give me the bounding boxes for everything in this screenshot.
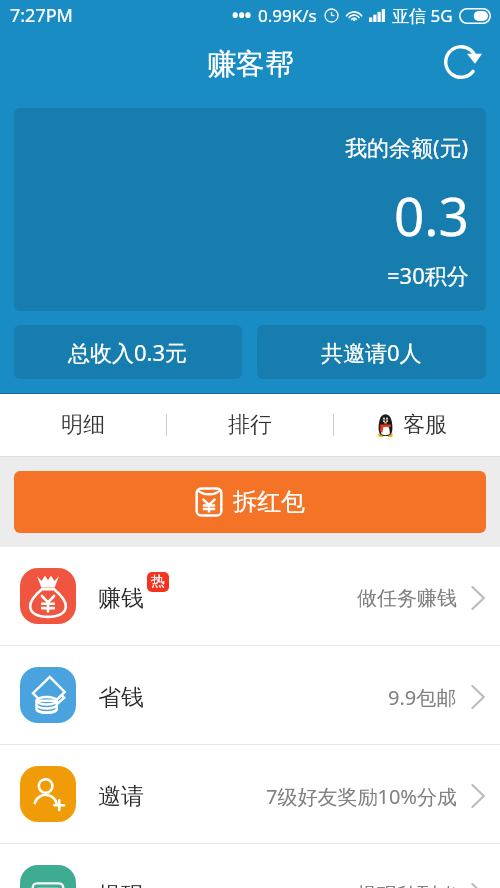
staticText: 亚信 5G [392, 4, 453, 27]
button[interactable]: 总收入0.3元 [14, 325, 242, 379]
staticText: 邀请 [98, 782, 144, 811]
button[interactable]: 赚钱 [0, 547, 500, 645]
staticText: 赚钱 [98, 584, 144, 613]
staticText: 赚客帮 [207, 46, 294, 83]
staticText: 7:27PM [10, 3, 73, 28]
staticText: 客服 [403, 411, 447, 439]
button[interactable]: 排行 [167, 394, 333, 456]
staticText: 0.3 [394, 179, 469, 251]
staticText: 总收入0.3元 [68, 337, 188, 367]
staticText: 提现 [98, 881, 144, 888]
staticText: 省钱 [98, 683, 144, 712]
button[interactable]: 提现 [0, 844, 500, 888]
staticText: =30积分 [387, 260, 469, 290]
staticText: 7级好友奖励10%分成 [266, 783, 457, 810]
staticText: 我的余额(元) [345, 132, 469, 162]
staticText: 9.9包邮 [388, 684, 457, 711]
button[interactable]: 拆红包 [14, 471, 486, 533]
button[interactable]: 邀请 [0, 745, 500, 843]
staticText: 做任务赚钱 [357, 586, 457, 611]
staticText: 热 [151, 573, 165, 591]
button[interactable]: Refresh [437, 38, 485, 86]
button[interactable]: 我的余额(元) [14, 108, 486, 311]
staticText: 排行 [228, 411, 272, 439]
staticText: ••• [232, 4, 252, 27]
button[interactable]: 明细 [0, 394, 166, 456]
staticText: 明细 [61, 411, 105, 439]
button[interactable]: 省钱 [0, 646, 500, 744]
button[interactable]: 共邀请0人 [257, 325, 486, 379]
staticText: 拆红包 [233, 487, 305, 517]
button[interactable]: 客服 [334, 394, 500, 456]
staticText: 一提现秒到账 [337, 883, 457, 888]
staticText: 0.99K/s [258, 4, 317, 27]
staticText: 共邀请0人 [321, 337, 422, 367]
